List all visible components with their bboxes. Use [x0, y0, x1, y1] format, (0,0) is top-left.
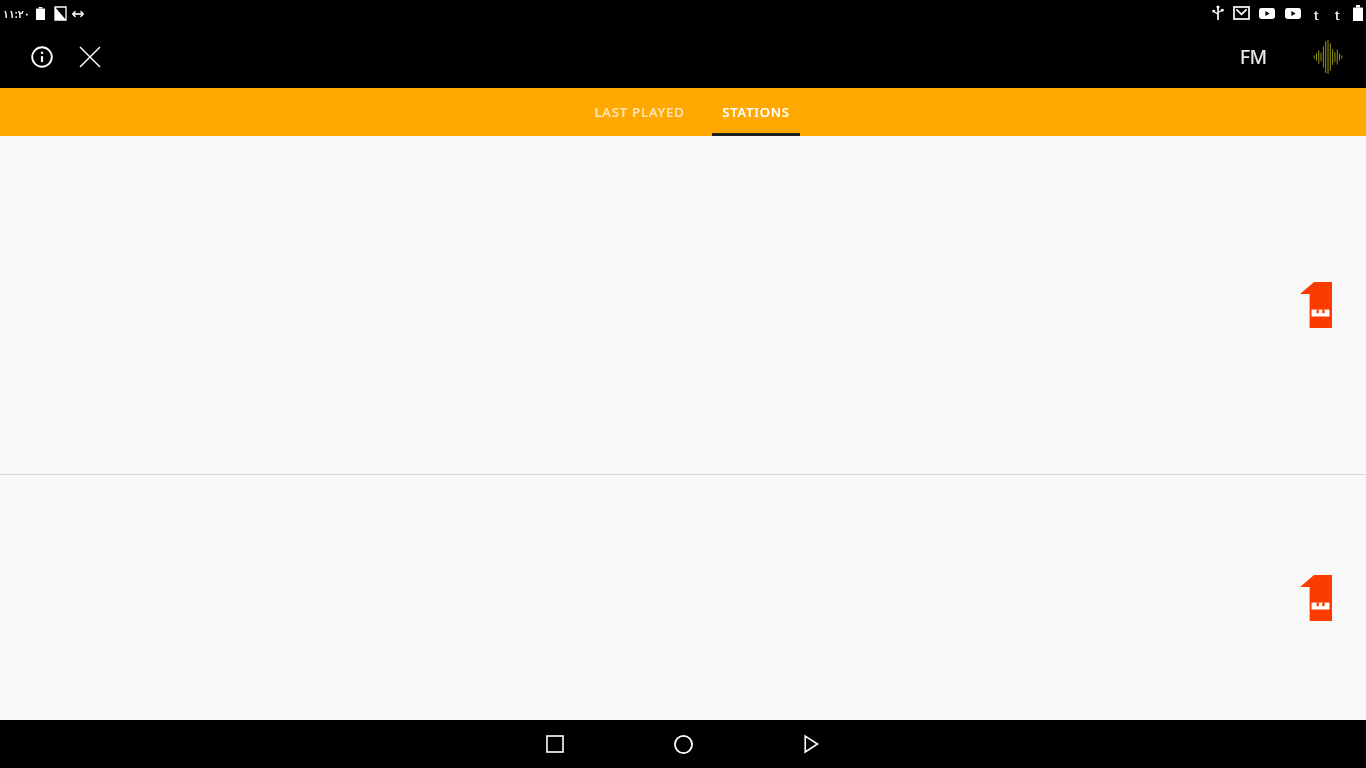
staticText: t [1335, 6, 1340, 20]
button[interactable]: Close [66, 33, 114, 81]
button[interactable]: Home [631, 720, 735, 768]
button[interactable]: Back [759, 720, 863, 768]
staticText: FM [1240, 44, 1268, 70]
staticText: STATIONS [722, 103, 790, 121]
staticText: LAST PLAYED [594, 103, 685, 121]
button[interactable]: STATIONS [712, 88, 800, 136]
button[interactable] [0, 475, 1366, 720]
button[interactable]: Equalizer [1306, 35, 1350, 79]
button[interactable]: FM [1234, 36, 1274, 78]
button[interactable] [0, 136, 1366, 474]
button[interactable]: LAST PLAYED [567, 88, 712, 136]
staticText: t [1314, 6, 1319, 20]
button[interactable]: Recent apps [503, 720, 607, 768]
button[interactable]: Info [18, 33, 66, 81]
staticText: ١١:٢٠ [3, 6, 30, 21]
